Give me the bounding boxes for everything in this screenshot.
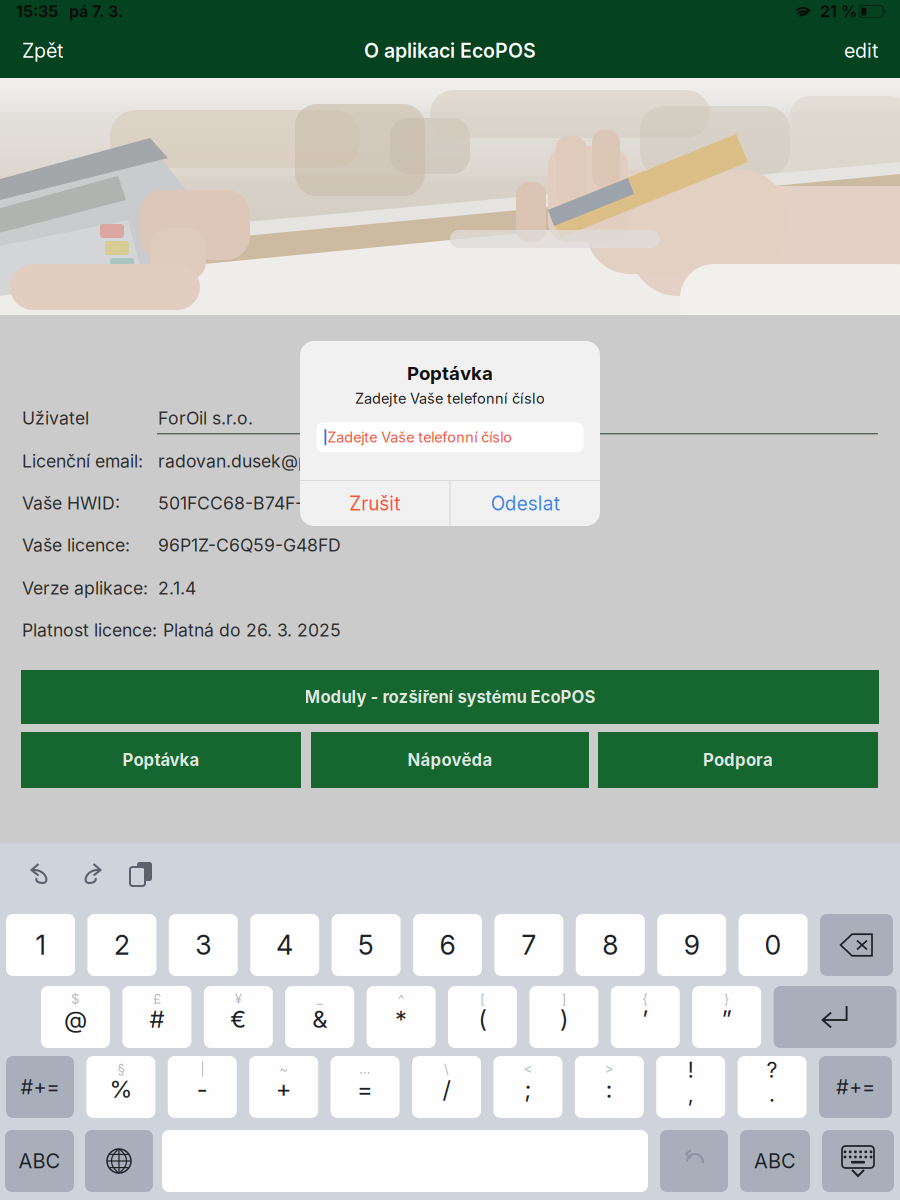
staticText: 15:35	[16, 2, 58, 21]
button[interactable]: ¥	[204, 986, 273, 1048]
button[interactable]: edit	[780, 23, 900, 78]
button[interactable]: Podpora	[598, 732, 878, 788]
staticText: *	[395, 1004, 407, 1033]
staticText: Vaše HWID:	[22, 492, 120, 514]
button[interactable]: Poptávka	[21, 732, 301, 788]
staticText: 5	[358, 929, 374, 961]
staticText: ^	[398, 991, 404, 1007]
staticText: +	[276, 1074, 292, 1103]
staticText: Zadejte Vaše telefonní číslo	[355, 390, 545, 407]
staticText: Platná do 26. 3. 2025	[163, 619, 341, 641]
button[interactable]: Next keyboard	[85, 1130, 153, 1192]
staticText: Zadejte Vaše telefonní číslo	[327, 428, 512, 446]
button[interactable]: 8	[576, 914, 645, 976]
button[interactable]: 1	[6, 914, 75, 976]
staticText: |	[200, 1061, 204, 1077]
staticText: ’	[642, 1004, 648, 1033]
staticText: ~	[279, 1061, 288, 1077]
staticText: )	[560, 1004, 568, 1033]
button[interactable]: 5	[332, 914, 401, 976]
staticText: 2	[114, 929, 130, 961]
staticText: Podpora	[703, 750, 773, 770]
staticText: 1	[35, 929, 45, 961]
button[interactable]: 6	[413, 914, 482, 976]
button[interactable]: ^	[367, 986, 436, 1048]
staticText: ¥	[235, 991, 242, 1007]
button[interactable]: Delete	[820, 914, 893, 976]
staticText: @	[64, 1004, 87, 1033]
button[interactable]: <	[493, 1056, 562, 1118]
staticText: 21 %	[820, 2, 857, 21]
staticText: ]	[561, 991, 566, 1007]
staticText: O aplikaci EcoPOS	[364, 39, 536, 62]
button[interactable]: \	[412, 1056, 481, 1118]
staticText: :	[606, 1074, 613, 1103]
button[interactable]: ?	[738, 1056, 807, 1118]
button[interactable]: Hide keyboard	[822, 1130, 894, 1192]
staticText: >	[605, 1061, 614, 1077]
staticText: #+=	[836, 1075, 875, 1099]
button[interactable]: Zrušit	[300, 481, 449, 526]
button[interactable]: 2	[87, 914, 156, 976]
button[interactable]: 7	[494, 914, 563, 976]
staticText: Platnost licence:	[22, 619, 157, 641]
staticText: Poptávka	[122, 750, 199, 770]
staticText: }	[724, 991, 730, 1007]
button[interactable]: |	[168, 1056, 237, 1118]
button[interactable]: _	[285, 986, 354, 1048]
button[interactable]: 9	[657, 914, 726, 976]
button[interactable]: 3	[169, 914, 238, 976]
button[interactable]: Zpět	[0, 23, 120, 78]
button[interactable]: Moduly - rozšíření systému EcoPOS	[21, 670, 879, 724]
staticText: 8	[602, 929, 618, 961]
button[interactable]: ~	[249, 1056, 318, 1118]
button[interactable]: >	[575, 1056, 644, 1118]
staticText: 4	[276, 929, 293, 961]
staticText: ?	[767, 1057, 778, 1083]
staticText: -	[197, 1074, 208, 1103]
staticText: ABC	[754, 1149, 796, 1173]
staticText: _	[317, 991, 323, 1007]
button[interactable]: 4	[250, 914, 319, 976]
button[interactable]: Redo	[70, 854, 112, 894]
staticText: 0	[765, 929, 782, 961]
button[interactable]: ]	[529, 986, 598, 1048]
staticText: 9	[684, 929, 700, 961]
button[interactable]: Odeslat	[450, 481, 600, 526]
button[interactable]: Undo	[20, 854, 62, 894]
button[interactable]: #+=	[6, 1056, 74, 1118]
staticText: £	[153, 991, 161, 1007]
button[interactable]: Undo	[660, 1130, 728, 1192]
button[interactable]: }	[692, 986, 761, 1048]
staticText: Zpět	[22, 39, 63, 62]
button[interactable]: !	[656, 1056, 725, 1118]
button[interactable]: £	[122, 986, 191, 1048]
staticText: Odeslat	[491, 492, 560, 515]
staticText: /	[442, 1074, 450, 1103]
button[interactable]: Return	[774, 986, 897, 1048]
button[interactable]: [	[448, 986, 517, 1048]
staticText: radovan.dusek@pol	[158, 450, 324, 472]
button[interactable]: $	[41, 986, 110, 1048]
staticText: &	[312, 1004, 327, 1033]
button[interactable]: §	[86, 1056, 155, 1118]
button[interactable]: #+=	[819, 1056, 892, 1118]
staticText: 96P1Z-C6Q59-G48FD	[158, 534, 341, 556]
staticText: ”	[722, 1004, 732, 1033]
button[interactable]: ABC	[5, 1130, 74, 1192]
staticText: 501FCC68-B74F-48	[158, 492, 325, 514]
staticText: %	[109, 1074, 132, 1103]
staticText: \	[444, 1061, 449, 1077]
staticText: #+=	[20, 1075, 59, 1099]
staticText: 2.1.4	[158, 577, 196, 599]
button[interactable]: {	[611, 986, 680, 1048]
button[interactable]: Nápověda	[311, 732, 589, 788]
button[interactable]: Paste	[120, 854, 162, 894]
button[interactable]: …	[331, 1056, 400, 1118]
staticText: <	[523, 1061, 532, 1077]
staticText: Vaše licence:	[22, 534, 130, 556]
button[interactable]: ABC	[740, 1130, 810, 1192]
staticText: ABC	[18, 1149, 60, 1173]
button[interactable]: 0	[739, 914, 808, 976]
